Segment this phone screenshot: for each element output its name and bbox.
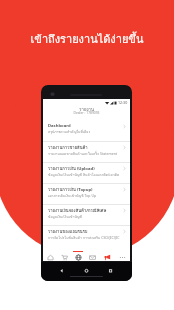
staticText: การจัดโปรโมชั่นสินค้า การส่งเสริม CSO/JI… xyxy=(48,235,120,241)
button[interactable]: รายงานของแถมในใบ xyxy=(43,226,130,246)
staticText: รายงานการเงิน (Upload) xyxy=(48,165,95,172)
staticText: ข้อมูลเงิน/เงินเข้าบัญชี xyxy=(48,214,82,220)
staticText: Dealer : 1789093 xyxy=(43,110,130,114)
button[interactable]: รายงานการขายสินค้า xyxy=(43,142,130,162)
staticText: เข้าถึงรายงานได้ง่ายขึ้น xyxy=(0,30,174,47)
button[interactable]: Reports xyxy=(71,251,85,261)
staticText: รายงานการเงิน (Topup) xyxy=(48,186,93,193)
button[interactable]: Back xyxy=(59,268,64,273)
staticText: 12:30 xyxy=(118,100,128,105)
staticText: Dashboard xyxy=(48,123,71,129)
staticText: สรุปภาพรวมสำคัญในที่เดียว xyxy=(48,129,91,135)
button[interactable]: Mail xyxy=(85,251,100,261)
staticText: รายงานการขายสินค้า xyxy=(48,144,88,151)
button[interactable]: รายงานการเงิน (Upload) xyxy=(43,163,130,183)
button[interactable]: More xyxy=(115,251,130,261)
button[interactable]: รายงานเงินจองสินค้า/กรณีพิเศษ xyxy=(43,205,130,225)
staticText: เอกสารเติมเงินเข้าบัญชี Top Up xyxy=(48,193,97,199)
button[interactable]: Recents xyxy=(108,268,113,273)
staticText: รายงานยอดขายสินค้าและใบเสร็จ Statement xyxy=(48,151,118,157)
button[interactable]: รายงานการเงิน (Topup) xyxy=(43,184,130,204)
staticText: ข้อมูลเงิน/เงินเข้าบัญชี สินค้าโอนเครดิต… xyxy=(48,172,120,178)
button[interactable]: Home xyxy=(43,251,57,261)
button[interactable]: Promotions xyxy=(100,251,115,261)
staticText: รายงานเงินจองสินค้า/กรณีพิเศษ xyxy=(48,207,107,214)
button[interactable]: Dashboard xyxy=(43,121,130,141)
staticText: รายงานของแถมในใบ xyxy=(48,228,88,235)
button[interactable]: Cart xyxy=(57,251,71,261)
staticText: รายงาน xyxy=(43,106,130,113)
button[interactable]: Home xyxy=(84,268,89,273)
